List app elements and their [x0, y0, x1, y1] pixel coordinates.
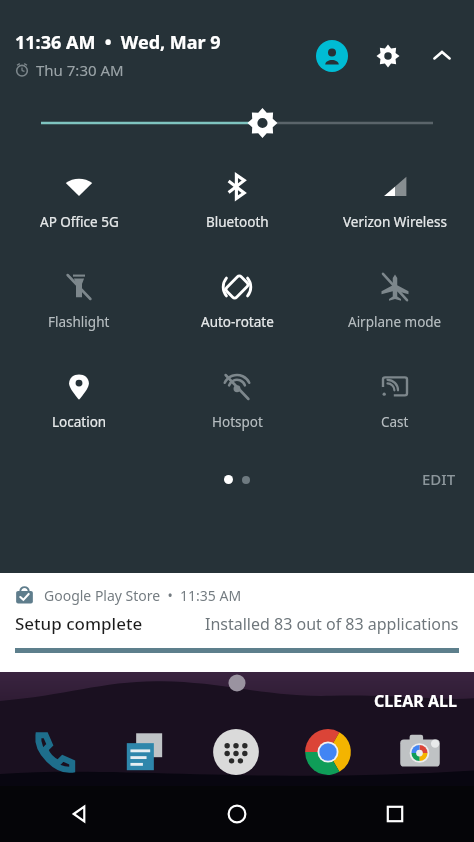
button[interactable]: Bluetooth [158, 170, 316, 233]
button[interactable]: Cast [316, 370, 474, 433]
button[interactable]: Collapse [426, 40, 458, 72]
button[interactable]: Flashlight [0, 270, 158, 333]
staticText: Airplane mode [348, 313, 442, 331]
staticText: Setup complete [15, 612, 143, 635]
button[interactable]: Verizon Wireless [316, 170, 474, 233]
staticText: AP Office 5G [40, 213, 119, 231]
button[interactable]: CLEAR ALL [374, 690, 457, 712]
button[interactable]: Recents [316, 786, 474, 842]
button[interactable]: Messages [99, 720, 190, 784]
button[interactable]: Hotspot [158, 370, 316, 433]
button[interactable]: Settings [372, 40, 404, 72]
button[interactable]: Chrome [282, 720, 374, 784]
staticText: EDIT [422, 469, 456, 489]
button[interactable]: Phone [8, 720, 99, 784]
button[interactable]: Location [0, 370, 158, 433]
staticText: 11:36 AM • Wed, Mar 9 [15, 30, 221, 55]
staticText: Google Play Store • 11:35 AM [44, 586, 242, 605]
staticText: Bluetooth [206, 213, 269, 231]
staticText: Location [52, 413, 107, 431]
button[interactable]: Back [0, 786, 158, 842]
button[interactable]: Apps [190, 720, 282, 784]
button[interactable]: Home [158, 786, 316, 842]
staticText: Thu 7:30 AM [36, 60, 124, 80]
staticText: Verizon Wireless [343, 213, 447, 231]
staticText: Installed 83 out of 83 applications [205, 613, 459, 635]
button[interactable]: User account [316, 40, 348, 72]
button[interactable]: AP Office 5G [0, 170, 158, 233]
button[interactable]: Brightness [0, 106, 474, 140]
staticText: Auto-rotate [201, 313, 274, 331]
staticText: Hotspot [212, 413, 263, 431]
button[interactable]: Airplane mode [316, 270, 474, 333]
button[interactable]: Auto-rotate [158, 270, 316, 333]
button[interactable]: Camera [374, 720, 466, 784]
button[interactable]: EDIT [422, 469, 456, 489]
staticText: Cast [381, 413, 409, 431]
staticText: Flashlight [48, 313, 110, 331]
